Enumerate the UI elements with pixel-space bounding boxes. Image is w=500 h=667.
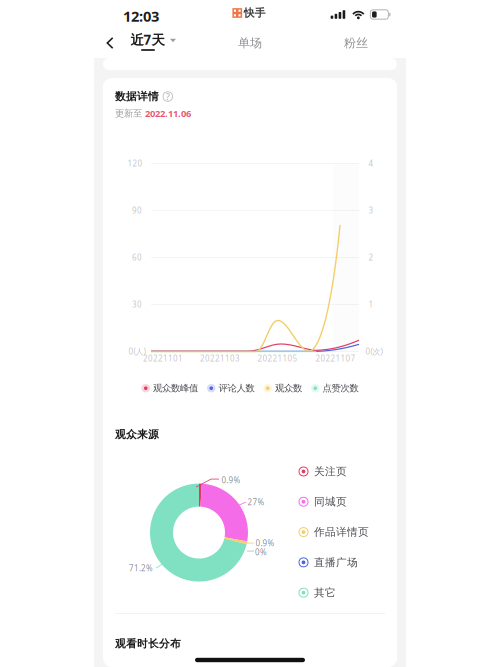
staticText: 20221105 — [257, 353, 297, 364]
button[interactable]: 点赞次数 — [311, 382, 358, 394]
staticText: 观看时长分布 — [115, 637, 181, 650]
button[interactable]: 粉丝 — [334, 30, 378, 56]
button[interactable]: 评论人数 — [207, 382, 254, 394]
staticText: 单场 — [238, 36, 262, 50]
button[interactable]: 关注页 — [299, 456, 383, 487]
staticText: 0(人) — [128, 346, 145, 357]
staticText: 数据详情 — [115, 90, 159, 103]
staticText: 60 — [132, 252, 142, 263]
button[interactable]: 观众数峰值 — [141, 382, 198, 394]
staticText: 0.9% — [221, 475, 240, 485]
staticText: 作品详情页 — [314, 525, 369, 539]
staticText: 观众来源 — [115, 428, 159, 441]
staticText: 近7天 — [130, 31, 164, 48]
staticText: 0(次) — [365, 346, 382, 357]
staticText: 20221101 — [143, 353, 183, 364]
staticText: 20221103 — [200, 353, 240, 364]
staticText: 20221107 — [315, 353, 355, 364]
staticText: 点赞次数 — [322, 382, 358, 394]
button[interactable]: 近7天 — [130, 30, 186, 56]
staticText: 观众数 — [275, 382, 302, 394]
staticText: 评论人数 — [218, 382, 254, 394]
staticText: 27% — [247, 497, 264, 507]
staticText: 直播广场 — [314, 556, 358, 569]
staticText: 120 — [127, 158, 142, 169]
staticText: 其它 — [314, 586, 336, 599]
staticText: 30 — [132, 299, 142, 310]
button[interactable]: 观众数 — [263, 382, 302, 394]
staticText: ? — [166, 90, 170, 103]
staticText: 90 — [132, 205, 142, 216]
staticText: 粉丝 — [344, 36, 368, 50]
staticText: 1 — [368, 299, 373, 310]
button[interactable]: 单场 — [228, 30, 272, 56]
staticText: 3 — [368, 205, 373, 216]
staticText: 0% — [255, 547, 267, 557]
button[interactable]: 作品详情页 — [299, 517, 383, 547]
staticText: 71.2% — [129, 563, 153, 573]
staticText: 观众数峰值 — [153, 382, 198, 394]
button[interactable]: 直播广场 — [299, 547, 383, 577]
staticText: 2022.11.06 — [145, 107, 191, 119]
staticText: 快手 — [244, 6, 266, 19]
staticText: 2 — [368, 252, 373, 263]
staticText: 0.9% — [255, 538, 274, 548]
staticText: 同城页 — [314, 495, 347, 508]
button[interactable]: 同城页 — [299, 487, 383, 517]
staticText: 12:03 — [123, 6, 159, 26]
button[interactable]: 其它 — [299, 577, 383, 608]
staticText: 4 — [368, 158, 373, 169]
button[interactable]: Back — [99, 30, 121, 56]
staticText: 关注页 — [314, 465, 347, 478]
staticText: 更新至 — [115, 108, 142, 119]
